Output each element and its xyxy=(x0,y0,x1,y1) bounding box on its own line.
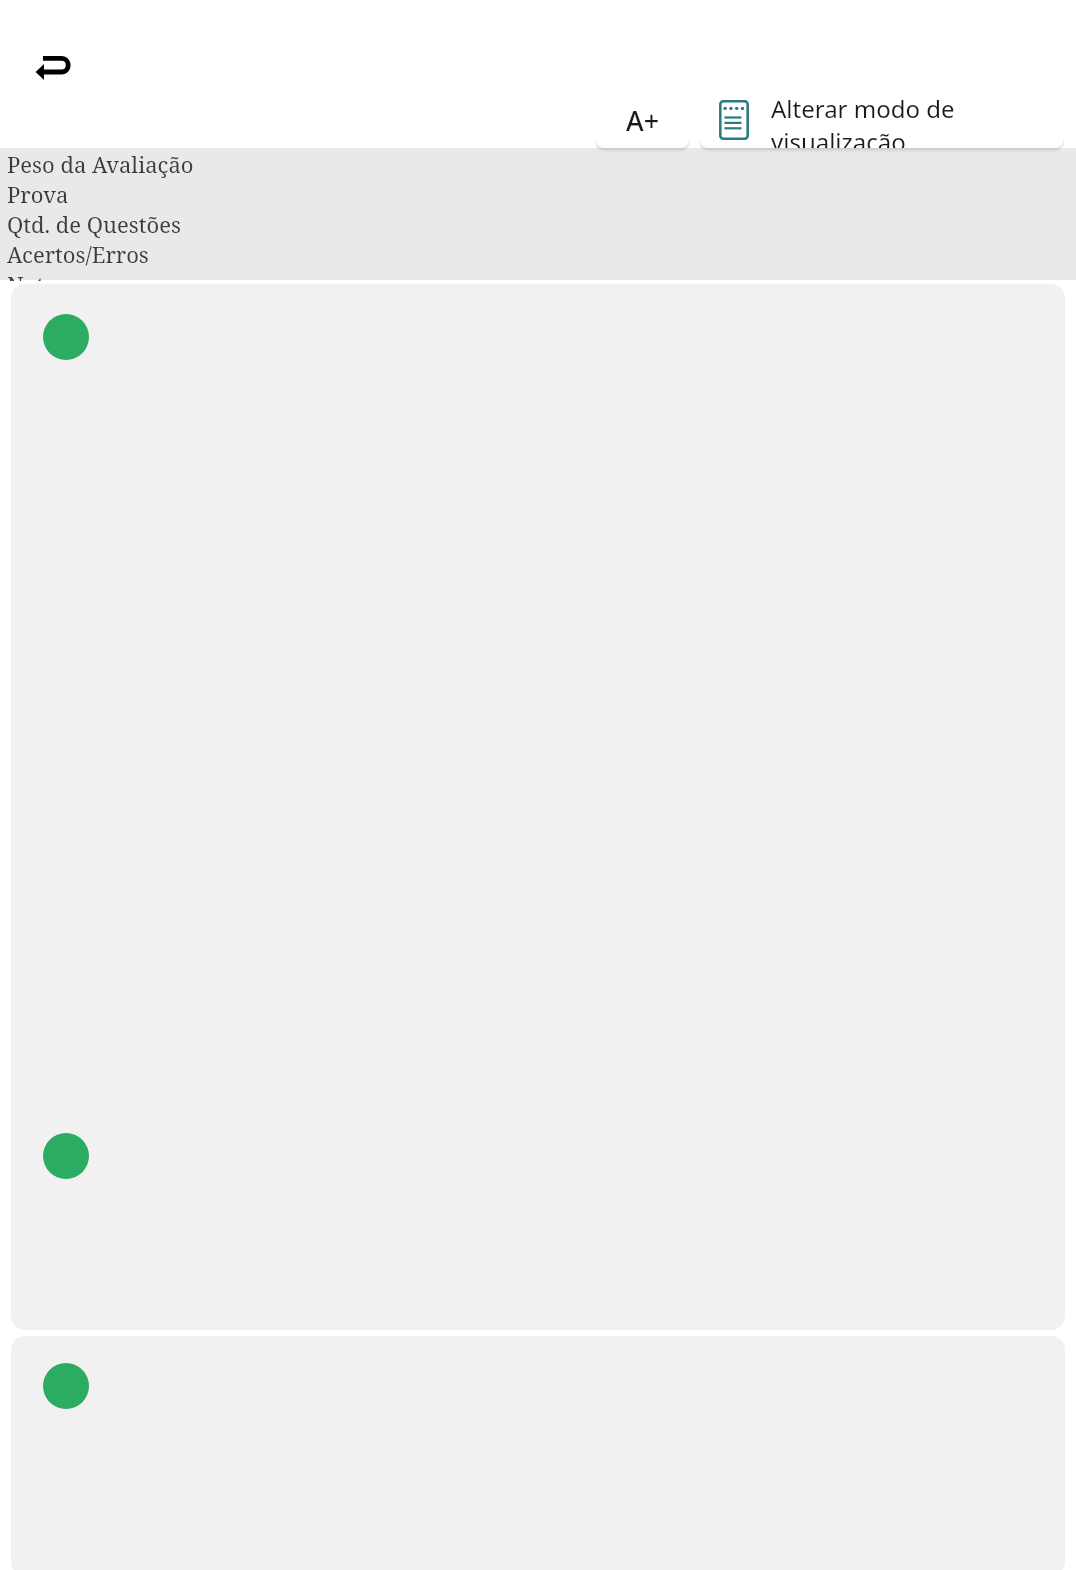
button[interactable] xyxy=(11,284,1065,1330)
staticText: Peso da Avaliação xyxy=(7,149,194,179)
staticText: A+ xyxy=(626,102,660,139)
staticText: Qtd. de Questões xyxy=(7,209,181,239)
staticText: Acertos/Erros xyxy=(7,239,149,269)
button[interactable]: Voltar xyxy=(18,36,90,100)
staticText: Prova xyxy=(7,179,69,209)
staticText: Alterar modo de visualização xyxy=(771,92,1048,148)
button[interactable] xyxy=(11,1336,1065,1570)
button[interactable]: Alterar modo de visualização xyxy=(699,92,1064,148)
staticText: Nota xyxy=(7,269,57,281)
button[interactable]: A+ xyxy=(595,92,690,148)
